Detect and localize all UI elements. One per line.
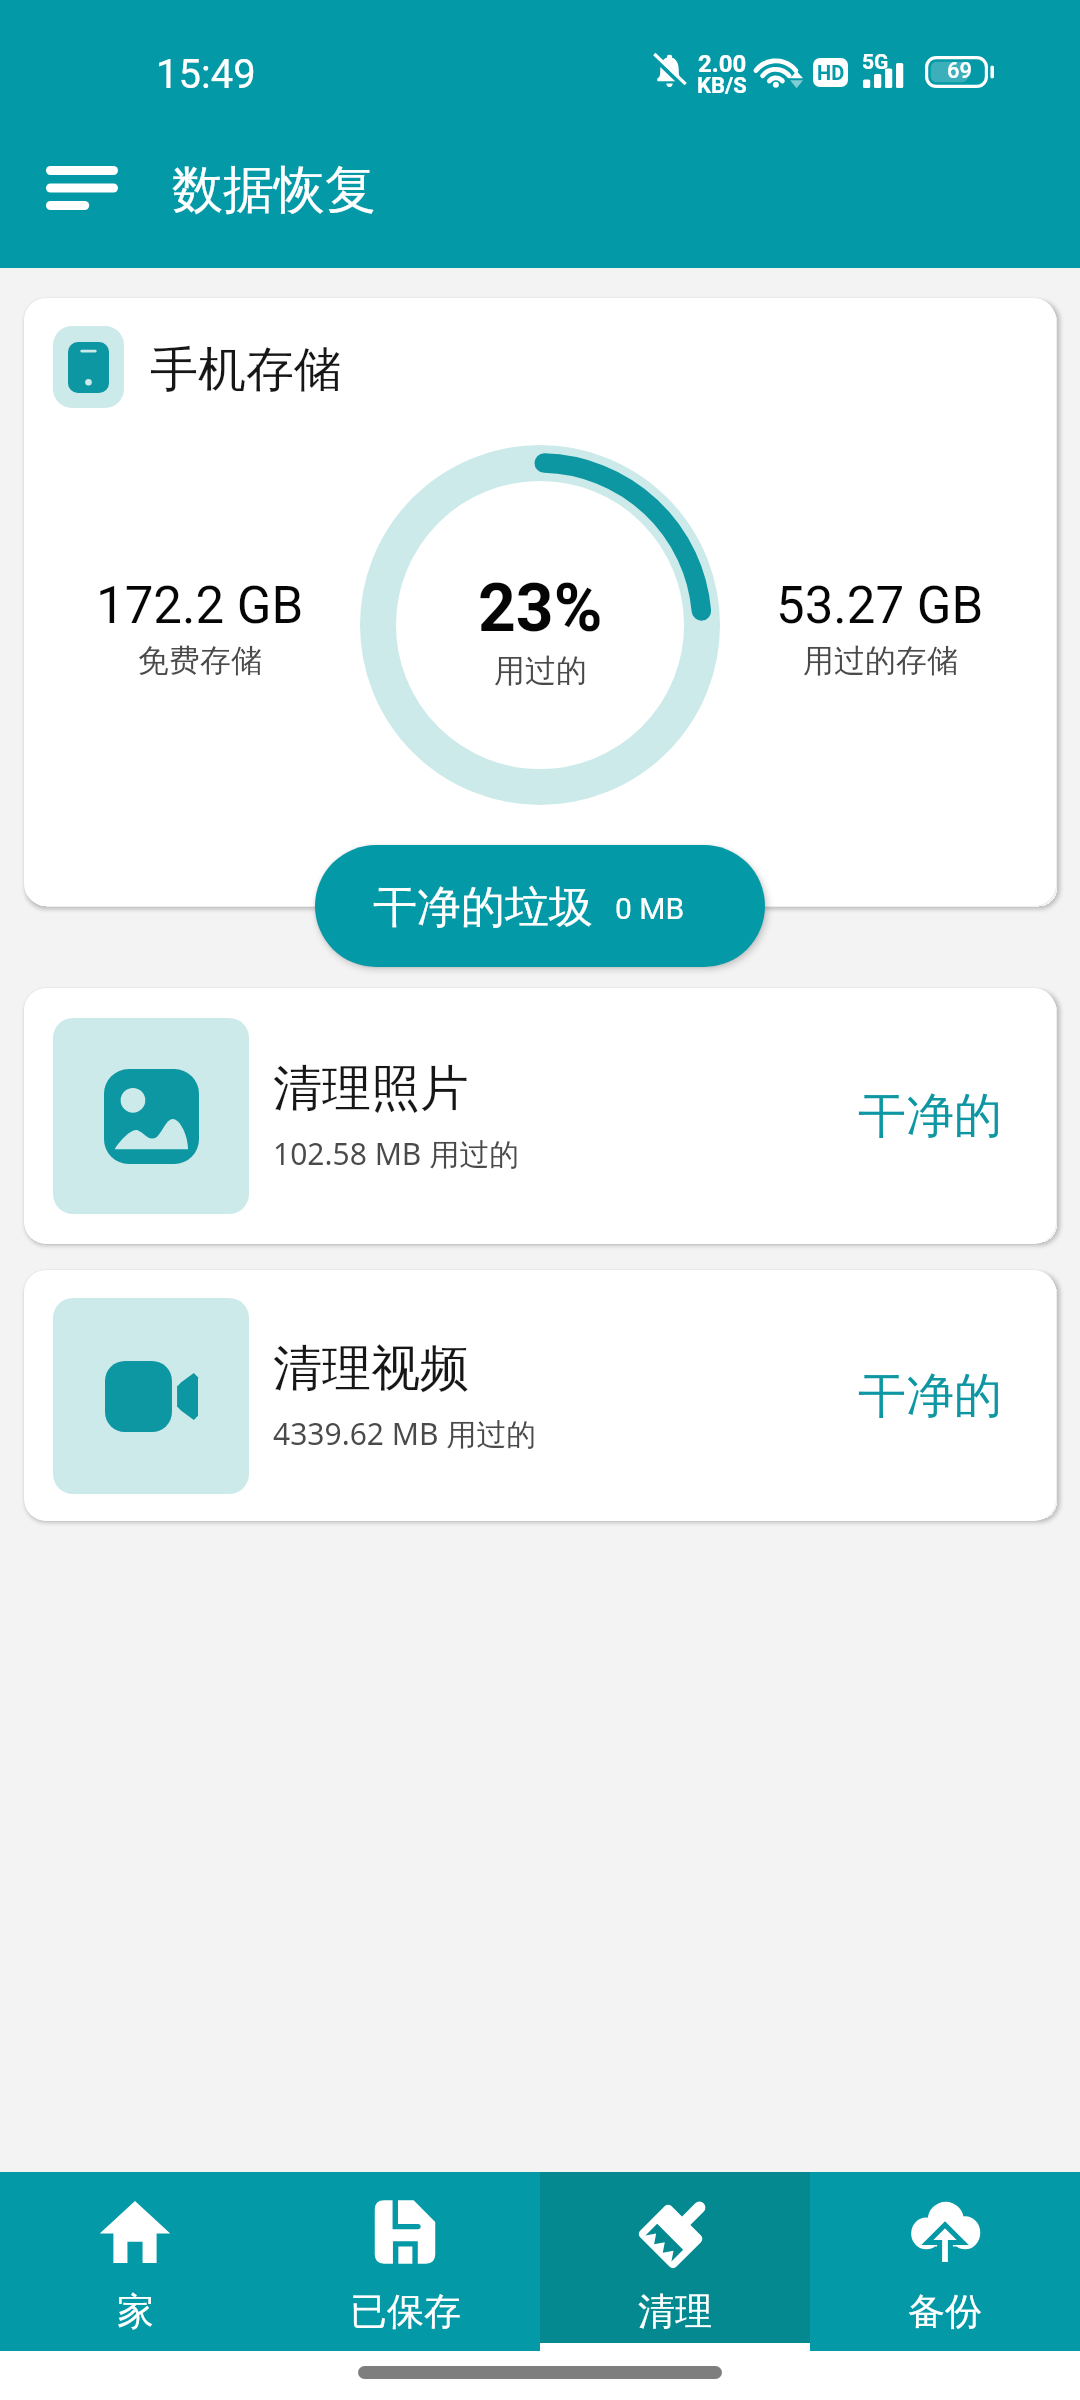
staticText: 69 [947, 58, 973, 84]
staticText: 清理照片 [273, 1058, 469, 1120]
staticText: 数据恢复 [172, 158, 376, 222]
staticText: 家 [117, 2288, 154, 2335]
staticText: 备份 [908, 2288, 982, 2335]
staticText: 2.00 [698, 50, 747, 78]
staticText: HD [817, 61, 845, 84]
staticText: 102.58 MB 用过的 [273, 1133, 520, 1174]
button[interactable]: Menu [11, 143, 155, 233]
staticText: 手机存储 [150, 340, 342, 400]
staticText: 清理 [638, 2288, 712, 2335]
staticText: 4339.62 MB 用过的 [273, 1413, 537, 1454]
staticText: 干净的垃圾 [373, 880, 593, 935]
button[interactable]: 清理 [540, 2172, 810, 2351]
staticText: 用过的 [494, 651, 587, 690]
button[interactable]: 清理视频 [24, 1270, 1056, 1521]
staticText: 已保存 [350, 2288, 461, 2335]
staticText: 免费存储 [138, 641, 262, 680]
button[interactable]: 备份 [810, 2172, 1080, 2351]
staticText: 用过的存储 [803, 641, 958, 680]
staticText: 干净的 [858, 1086, 1002, 1146]
staticText: 0 MB [615, 891, 685, 926]
staticText: 5G [862, 50, 889, 75]
staticText: 15:49 [156, 51, 256, 98]
staticText: 清理视频 [273, 1338, 469, 1400]
button[interactable]: 干净的垃圾 [315, 845, 765, 967]
button[interactable]: 已保存 [270, 2172, 540, 2351]
staticText: 干净的 [858, 1366, 1002, 1426]
button[interactable]: 清理照片 [24, 988, 1056, 1244]
staticText: 172.2 GB [96, 576, 304, 636]
staticText: KB/S [697, 73, 747, 99]
staticText: 53.27 GB [776, 576, 984, 636]
staticText: 23% [478, 570, 603, 647]
button[interactable]: 家 [0, 2172, 270, 2351]
